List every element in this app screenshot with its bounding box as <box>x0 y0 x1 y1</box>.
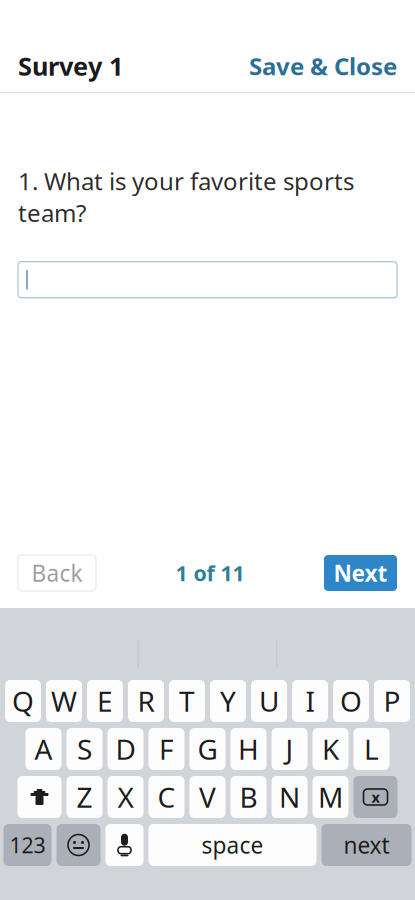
button[interactable]: Q <box>5 680 41 722</box>
staticText: Next <box>333 558 387 588</box>
staticText: Z <box>76 778 92 816</box>
button[interactable]: J <box>271 728 307 770</box>
staticText: S <box>77 730 92 768</box>
staticText: next <box>343 830 389 860</box>
button[interactable]: Save & Close <box>249 44 397 88</box>
staticText: Back <box>31 558 82 588</box>
staticText: B <box>239 778 257 816</box>
button[interactable]: Back <box>18 555 96 591</box>
button[interactable]: U <box>251 680 287 722</box>
staticText: X <box>117 778 133 816</box>
button[interactable]: V <box>189 776 225 818</box>
button[interactable]: L <box>353 728 389 770</box>
button[interactable]: Emoji <box>56 824 100 866</box>
button[interactable]: Shift <box>17 776 61 818</box>
staticText: D <box>115 730 135 768</box>
button[interactable]: S <box>66 728 102 770</box>
staticText: C <box>157 778 175 816</box>
staticText: Survey 1 <box>18 49 123 83</box>
staticText: J <box>285 730 293 768</box>
staticText: 1. What is your favorite sports team? <box>18 165 354 229</box>
button[interactable]: W <box>46 680 82 722</box>
button[interactable]: A <box>25 728 61 770</box>
staticText: Y <box>220 682 236 720</box>
staticText: V <box>199 778 216 816</box>
staticText: K <box>322 730 339 768</box>
staticText: W <box>51 682 77 720</box>
button[interactable]: C <box>148 776 184 818</box>
staticText: x <box>371 787 379 807</box>
button[interactable]: G <box>189 728 225 770</box>
staticText: O <box>340 682 362 720</box>
button[interactable]: M <box>312 776 348 818</box>
staticText: F <box>159 730 174 768</box>
staticText: 123 <box>9 831 45 859</box>
button[interactable]: D <box>107 728 143 770</box>
button[interactable]: Dictate <box>105 824 143 866</box>
staticText: space <box>201 830 263 860</box>
button[interactable]: Y <box>210 680 246 722</box>
button[interactable]: H <box>230 728 266 770</box>
button[interactable]: N <box>271 776 307 818</box>
staticText: Save & Close <box>249 50 397 82</box>
staticText: H <box>238 730 259 768</box>
button[interactable]: E <box>87 680 123 722</box>
staticText: U <box>259 682 279 720</box>
button[interactable]: Delete <box>353 776 397 818</box>
staticText: L <box>364 730 379 768</box>
button[interactable]: F <box>148 728 184 770</box>
button[interactable]: X <box>107 776 143 818</box>
staticText: T <box>179 682 195 720</box>
button[interactable]: K <box>312 728 348 770</box>
button[interactable]: P <box>374 680 410 722</box>
staticText: I <box>305 682 314 720</box>
button[interactable]: O <box>333 680 369 722</box>
staticText: N <box>279 778 300 816</box>
button[interactable]: T <box>169 680 205 722</box>
button[interactable]: I <box>292 680 328 722</box>
staticText: A <box>34 730 52 768</box>
button[interactable]: 123 <box>3 824 51 866</box>
staticText: G <box>197 730 217 768</box>
button[interactable]: space <box>148 824 316 866</box>
staticText: R <box>137 682 154 720</box>
button[interactable]: R <box>128 680 164 722</box>
staticText: E <box>97 682 113 720</box>
button[interactable]: Next <box>324 555 397 591</box>
button[interactable]: Z <box>66 776 102 818</box>
staticText: 1 of 11 <box>175 559 244 587</box>
button[interactable]: next <box>321 824 411 866</box>
staticText: M <box>318 778 343 816</box>
button[interactable]: B <box>230 776 266 818</box>
staticText: Q <box>12 682 34 720</box>
staticText: P <box>383 682 400 720</box>
